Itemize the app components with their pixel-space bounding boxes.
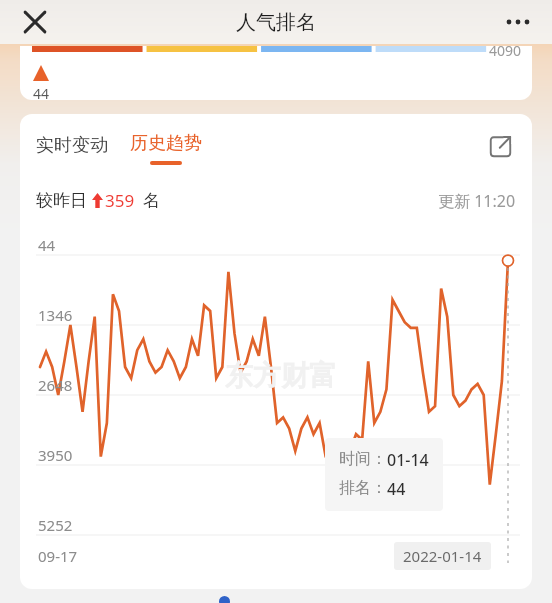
button[interactable]: 历史趋势 (127, 132, 205, 165)
staticText: 2648 (38, 375, 73, 395)
staticText: 历史趋势 (130, 132, 202, 155)
staticText: 较昨日 (36, 190, 87, 211)
staticText: 更新 11:20 (438, 190, 516, 212)
button[interactable]: More options (502, 6, 534, 38)
staticText: 359 (105, 189, 135, 212)
staticText: 时间： (339, 449, 387, 469)
staticText: 排名： (339, 478, 387, 498)
staticText: 1346 (38, 305, 73, 325)
button[interactable]: Share (488, 134, 513, 159)
staticText: 4090 (489, 46, 522, 60)
button[interactable]: 实时变动 (33, 132, 111, 159)
staticText: 44 (33, 84, 50, 100)
button[interactable]: Close (20, 7, 50, 37)
staticText: 09-17 (38, 546, 78, 566)
staticText: 44 (387, 478, 406, 500)
staticText: 东方财富 (225, 358, 337, 393)
staticText: 2022-01-14 (403, 546, 482, 566)
staticText: 5252 (38, 515, 73, 535)
staticText: 名 (143, 190, 160, 211)
button[interactable]: 4090 (20, 46, 532, 100)
staticText: 01-14 (387, 449, 429, 471)
staticText: 人气排名 (236, 10, 316, 35)
staticText: 实时变动 (36, 134, 108, 157)
staticText: 3950 (38, 445, 73, 465)
staticText: 44 (38, 235, 56, 255)
